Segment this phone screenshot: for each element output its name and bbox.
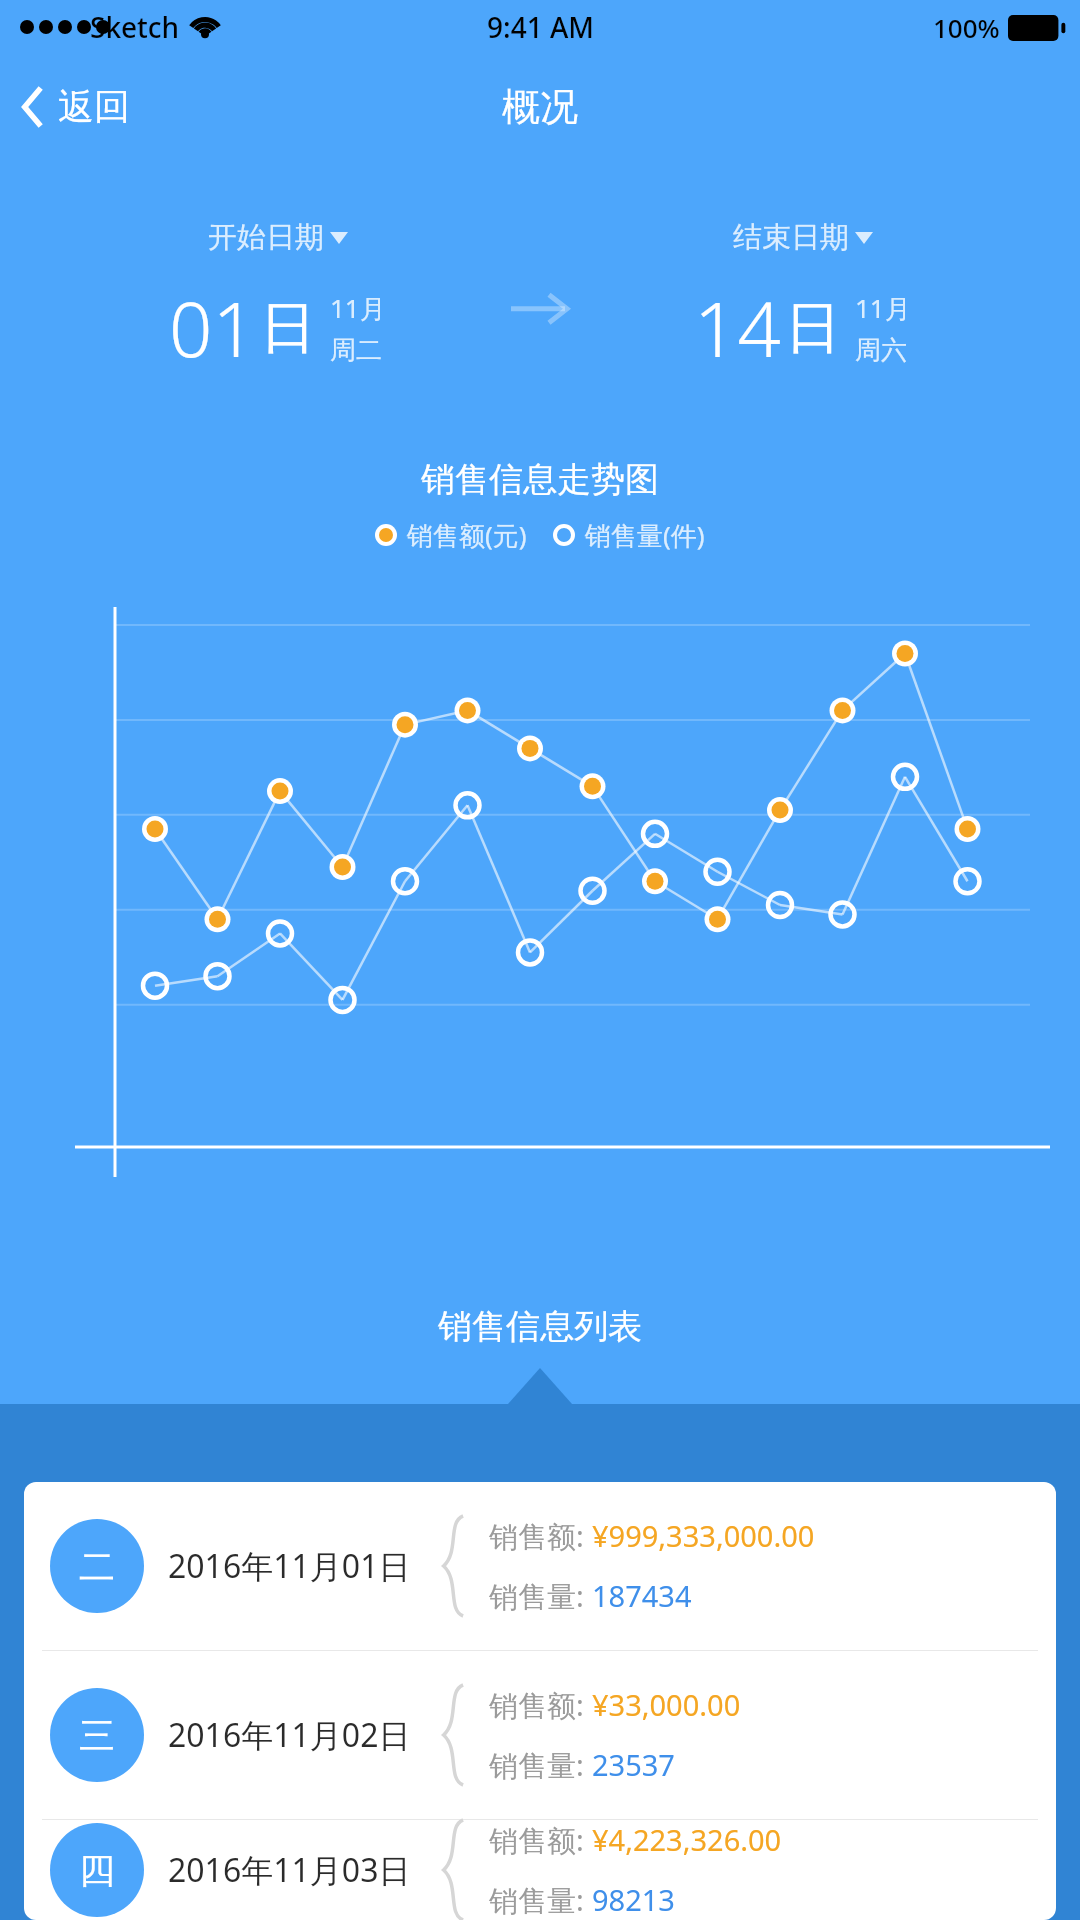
staticText: 销售额:: [489, 1516, 592, 1556]
staticText: 销售量:: [489, 1745, 592, 1785]
button[interactable]: 结束日期: [575, 219, 1030, 380]
staticText: 周二: [330, 334, 382, 367]
staticText: 销售量:: [489, 1576, 592, 1616]
button[interactable]: 销售信息列表: [0, 1305, 1080, 1348]
button[interactable]: 返回: [0, 74, 152, 139]
staticText: 销售信息列表: [438, 1305, 642, 1348]
staticText: 结束日期: [733, 219, 849, 256]
staticText: ¥33,000.00: [592, 1685, 741, 1724]
staticText: ¥4,223,326.00: [592, 1820, 782, 1859]
button[interactable]: 四: [24, 1820, 1056, 1920]
staticText: 销售额:: [489, 1685, 592, 1725]
staticText: 14: [694, 276, 781, 380]
staticText: 100%: [933, 10, 1000, 45]
staticText: 销售额(元): [407, 517, 527, 553]
staticText: 11月: [330, 290, 386, 326]
staticText: 日: [260, 293, 316, 364]
staticText: 日: [785, 293, 841, 364]
staticText: 返回: [58, 84, 130, 129]
staticText: ¥999,333,000.00: [592, 1516, 815, 1555]
staticText: 11月: [855, 290, 911, 326]
staticText: 周六: [855, 334, 907, 367]
staticText: 2016年11月02日: [168, 1713, 411, 1757]
staticText: 销售额:: [489, 1820, 592, 1860]
staticText: 概况: [502, 83, 578, 131]
staticText: 2016年11月03日: [168, 1848, 411, 1892]
staticText: 四: [79, 1848, 115, 1893]
staticText: 23537: [592, 1745, 675, 1784]
button[interactable]: 二: [24, 1482, 1056, 1650]
button[interactable]: 开始日期: [50, 219, 505, 380]
staticText: Sketch: [90, 8, 180, 46]
staticText: 9:41 AM: [487, 8, 594, 46]
staticText: 187434: [592, 1576, 692, 1615]
staticText: 98213: [592, 1880, 675, 1919]
staticText: 三: [79, 1713, 115, 1758]
staticText: 01: [169, 276, 256, 380]
button[interactable]: 三: [24, 1651, 1056, 1819]
staticText: 2016年11月01日: [168, 1544, 411, 1588]
staticText: 开始日期: [208, 219, 324, 256]
staticText: 二: [79, 1544, 115, 1589]
staticText: 销售量(件): [585, 517, 705, 553]
staticText: 销售信息走势图: [421, 458, 659, 501]
staticText: 销售量:: [489, 1880, 592, 1920]
